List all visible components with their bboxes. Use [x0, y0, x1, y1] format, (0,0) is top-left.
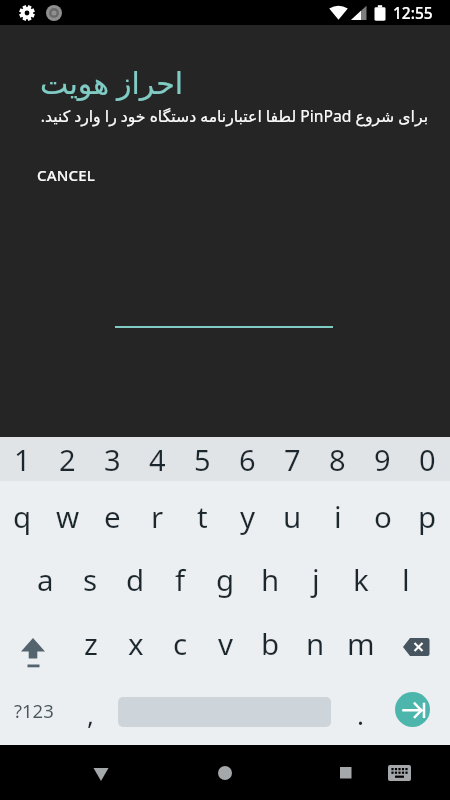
staticText: CANCEL: [37, 165, 96, 185]
staticText: 8: [329, 440, 346, 479]
staticText: v: [218, 623, 233, 663]
button[interactable]: t: [180, 483, 225, 549]
staticText: m: [347, 623, 375, 663]
staticText: 1: [14, 440, 31, 479]
button[interactable]: ,: [68, 679, 113, 749]
staticText: ?123: [14, 698, 54, 723]
button[interactable]: [202, 750, 247, 795]
staticText: 9: [374, 440, 391, 479]
button[interactable]: 6: [225, 437, 270, 481]
staticText: z: [84, 623, 98, 663]
staticText: f: [175, 559, 186, 599]
staticText: .: [357, 697, 364, 732]
button[interactable]: v: [203, 611, 248, 675]
staticText: 5: [194, 440, 211, 479]
button[interactable]: ?123: [0, 675, 68, 745]
staticText: a: [37, 559, 54, 599]
staticText: h: [261, 559, 280, 599]
staticText: 6: [239, 440, 256, 479]
button[interactable]: 2: [45, 437, 90, 481]
button[interactable]: g: [203, 547, 248, 611]
staticText: q: [13, 496, 32, 536]
staticText: l: [402, 559, 410, 599]
button[interactable]: 0: [405, 437, 450, 481]
button[interactable]: z: [68, 611, 113, 675]
button[interactable]: 1: [0, 437, 45, 481]
staticText: j: [312, 559, 320, 599]
staticText: k: [353, 559, 369, 599]
button[interactable]: 9: [360, 437, 405, 481]
button[interactable]: [383, 611, 450, 675]
button[interactable]: [78, 750, 123, 795]
button[interactable]: b: [248, 611, 293, 675]
staticText: w: [56, 496, 80, 536]
button[interactable]: [395, 692, 430, 727]
staticText: 7: [284, 440, 301, 479]
button[interactable]: CANCEL: [22, 150, 111, 200]
button[interactable]: .: [338, 679, 383, 749]
staticText: احراز هویت: [40, 62, 184, 103]
staticText: برای شروع PinPad لطفا اعتبارنامه دستگاه …: [22, 105, 428, 126]
staticText: n: [306, 623, 325, 663]
button[interactable]: w: [45, 483, 90, 549]
staticText: y: [240, 496, 256, 536]
button[interactable]: c: [158, 611, 203, 675]
button[interactable]: d: [113, 547, 158, 611]
button[interactable]: s: [68, 547, 113, 611]
button[interactable]: l: [383, 547, 428, 611]
staticText: c: [173, 623, 188, 663]
staticText: u: [283, 496, 302, 536]
button[interactable]: 3: [90, 437, 135, 481]
button[interactable]: f: [158, 547, 203, 611]
staticText: p: [418, 496, 437, 536]
staticText: ,: [87, 697, 94, 732]
button[interactable]: 5: [180, 437, 225, 481]
button[interactable]: p: [405, 483, 450, 549]
staticText: 3: [104, 440, 121, 479]
staticText: 0: [419, 440, 436, 479]
staticText: b: [261, 623, 280, 663]
staticText: 2: [59, 440, 76, 479]
button[interactable]: [0, 611, 68, 675]
staticText: r: [151, 496, 164, 536]
staticText: g: [216, 559, 235, 599]
button[interactable]: a: [23, 547, 68, 611]
staticText: 4: [149, 440, 166, 479]
button[interactable]: e: [90, 483, 135, 549]
button[interactable]: h: [248, 547, 293, 611]
staticText: d: [126, 559, 145, 599]
button[interactable]: j: [293, 547, 338, 611]
button[interactable]: m: [338, 611, 383, 675]
button[interactable]: i: [315, 483, 360, 549]
button[interactable]: 7: [270, 437, 315, 481]
button[interactable]: q: [0, 483, 45, 549]
button[interactable]: y: [225, 483, 270, 549]
button[interactable]: o: [360, 483, 405, 549]
staticText: t: [197, 496, 208, 536]
button[interactable]: [323, 750, 368, 795]
button[interactable]: 8: [315, 437, 360, 481]
button[interactable]: x: [113, 611, 158, 675]
button[interactable]: r: [135, 483, 180, 549]
staticText: x: [128, 623, 144, 663]
button[interactable]: u: [270, 483, 315, 549]
button[interactable]: k: [338, 547, 383, 611]
staticText: e: [104, 496, 121, 536]
button[interactable]: n: [293, 611, 338, 675]
staticText: s: [83, 559, 98, 599]
button[interactable]: 4: [135, 437, 180, 481]
button[interactable]: [380, 750, 420, 795]
staticText: 12:55: [393, 2, 433, 23]
staticText: i: [334, 496, 342, 536]
staticText: o: [374, 496, 392, 536]
